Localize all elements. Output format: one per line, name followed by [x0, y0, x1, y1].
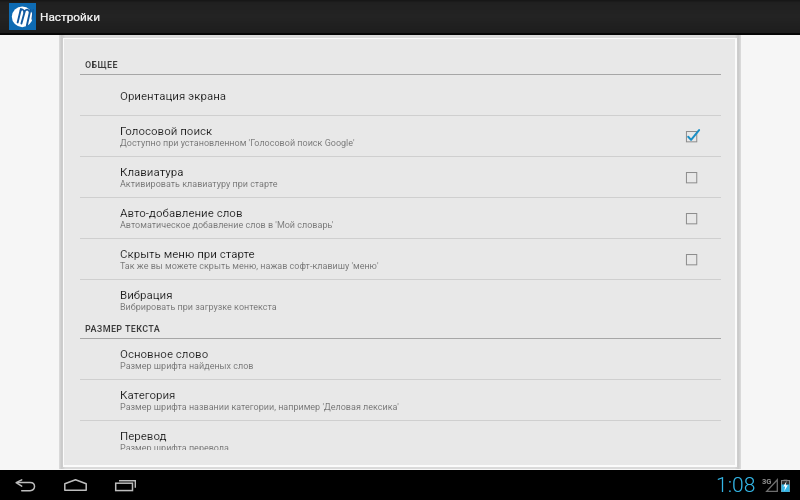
- button[interactable]: Скрыть меню при старте: [80, 239, 721, 279]
- button[interactable]: Вибрация: [80, 280, 721, 320]
- staticText: Перевод: [120, 429, 167, 442]
- button[interactable]: Back: [0, 470, 50, 500]
- button[interactable]: Категория: [80, 380, 721, 420]
- staticText: Вибрация: [120, 288, 173, 301]
- button[interactable]: Основное слово: [80, 339, 721, 379]
- button[interactable]: Home: [50, 470, 100, 500]
- button[interactable]: Checked: [685, 128, 701, 144]
- staticText: Голосовой поиск: [120, 124, 213, 137]
- staticText: Автоматическое добавление слов в 'Мой сл…: [120, 220, 334, 231]
- staticText: Размер шрифта названии категории, наприм…: [120, 402, 399, 413]
- staticText: ОБЩЕЕ: [85, 60, 118, 71]
- button[interactable]: Клавиатура: [80, 157, 721, 197]
- staticText: Авто-добавление слов: [120, 206, 243, 219]
- staticText: 3G: [762, 477, 772, 486]
- button[interactable]: Not checked: [685, 169, 701, 185]
- staticText: Так же вы можете скрыть меню, нажав софт…: [120, 261, 379, 272]
- staticText: Размер шрифта найденых слов: [120, 361, 254, 372]
- staticText: Ориентация экрана: [120, 89, 227, 102]
- button[interactable]: App icon: [0, 0, 101, 33]
- staticText: Размер шрифта перевода: [120, 443, 230, 450]
- staticText: Активировать клавиатуру при старте: [120, 179, 278, 190]
- staticText: Доступно при установленном 'Голосовой по…: [120, 138, 355, 149]
- staticText: Вибрировать при загрузке контекста: [120, 302, 277, 313]
- button[interactable]: Авто-добавление слов: [80, 198, 721, 238]
- button[interactable]: Перевод: [80, 421, 721, 450]
- button[interactable]: Not checked: [685, 210, 701, 226]
- staticText: Скрыть меню при старте: [120, 247, 255, 260]
- button[interactable]: Голосовой поиск: [80, 116, 721, 156]
- button[interactable]: Not checked: [685, 251, 701, 267]
- staticText: РАЗМЕР ТЕКСТА: [85, 324, 161, 335]
- button[interactable]: Recent apps: [100, 470, 150, 500]
- staticText: 1:08: [716, 473, 756, 498]
- staticText: Основное слово: [120, 347, 209, 360]
- other: App icon: [9, 3, 36, 30]
- staticText: Клавиатура: [120, 165, 184, 178]
- staticText: Категория: [120, 388, 176, 401]
- staticText: Настройки: [40, 10, 101, 24]
- button[interactable]: Ориентация экрана: [80, 75, 721, 115]
